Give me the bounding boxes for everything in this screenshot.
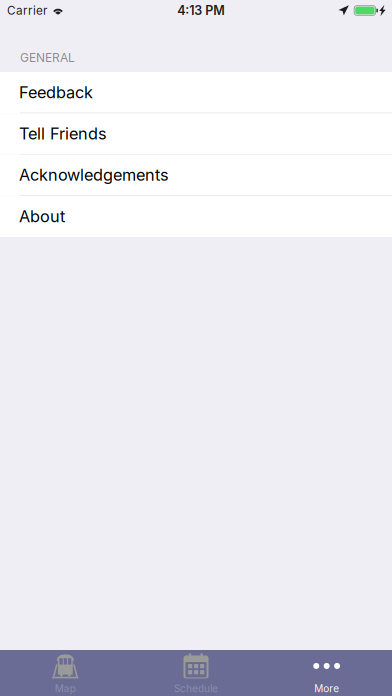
button[interactable]: Acknowledgements [0,154,392,196]
staticText: Carrier [7,3,47,18]
staticText: More [314,682,339,695]
staticText: Schedule [174,682,218,695]
staticText: Acknowledgements [19,165,169,185]
button[interactable]: Map [0,650,131,696]
button[interactable]: Schedule [131,650,261,696]
button[interactable]: Feedback [0,72,392,113]
staticText: 4:13 PM [177,3,225,18]
button[interactable]: Tell Friends [0,113,392,154]
staticText: Feedback [19,82,93,102]
button[interactable]: About [0,196,392,237]
button[interactable]: More [261,650,392,696]
staticText: Map [55,682,76,695]
staticText: Tell Friends [19,124,107,143]
staticText: About [19,206,65,226]
staticText: GENERAL [20,50,75,65]
